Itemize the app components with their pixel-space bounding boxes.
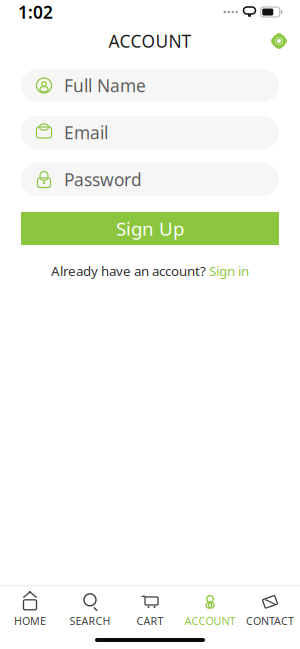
button[interactable]: CART	[120, 586, 180, 634]
button[interactable]: ACCOUNT	[180, 586, 240, 634]
button[interactable]: Full Name	[21, 69, 279, 102]
staticText: HOME	[14, 614, 46, 628]
button[interactable]: CONTACT	[240, 586, 300, 634]
button[interactable]: Settings	[258, 24, 300, 58]
staticText: Sign in	[209, 262, 249, 280]
staticText: 1:02	[18, 0, 53, 23]
button[interactable]: Already have an account?	[51, 259, 249, 283]
staticText: Password	[64, 168, 142, 191]
staticText: ACCOUNT	[184, 614, 235, 628]
staticText: CART	[136, 614, 163, 628]
staticText: ACCOUNT	[108, 29, 191, 52]
staticText: Email	[64, 121, 108, 144]
button[interactable]: SEARCH	[60, 586, 120, 634]
staticText: Sign Up	[116, 216, 184, 241]
staticText: Already have an account?	[51, 262, 206, 280]
staticText: Full Name	[64, 74, 146, 97]
button[interactable]: Password	[21, 163, 279, 196]
staticText: CONTACT	[246, 614, 294, 628]
staticText: SEARCH	[69, 614, 110, 628]
button[interactable]: HOME	[0, 586, 60, 634]
button[interactable]: Email	[21, 116, 279, 149]
button[interactable]: Sign Up	[21, 212, 279, 245]
